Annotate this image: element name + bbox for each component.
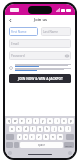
button[interactable]: Email	[9, 39, 71, 48]
button[interactable]: d	[23, 126, 29, 132]
button[interactable]: b	[43, 134, 49, 140]
staticText: t	[35, 119, 37, 123]
button[interactable]: First Name	[9, 27, 38, 36]
button[interactable]: w	[12, 118, 18, 124]
staticText: w	[14, 119, 17, 123]
button[interactable]: y	[40, 118, 46, 124]
button[interactable]: Shift	[6, 134, 14, 140]
staticText: u	[49, 119, 51, 123]
staticText: l	[68, 127, 69, 131]
staticText: k	[60, 127, 62, 131]
staticText: r	[28, 119, 30, 123]
button[interactable]: c	[29, 134, 35, 140]
button[interactable]: s	[16, 126, 22, 132]
staticText: i	[57, 119, 58, 123]
button[interactable]: e	[19, 118, 25, 124]
staticText: p	[70, 119, 72, 123]
staticText: b	[45, 135, 47, 139]
staticText: Password	[11, 54, 25, 58]
staticText: Join us	[34, 17, 47, 22]
staticText: First Name	[11, 30, 27, 34]
button[interactable]: Accept terms	[9, 66, 13, 70]
staticText: JOIN NOW & WIN A JACKPOT	[18, 77, 63, 81]
button[interactable]: Change keyboard	[8, 151, 12, 155]
button[interactable]: space	[20, 142, 63, 148]
staticText: y	[42, 119, 44, 123]
staticText: q	[8, 119, 10, 123]
staticText: a	[11, 127, 13, 131]
staticText: e	[21, 119, 23, 123]
staticText: z	[19, 135, 21, 139]
button[interactable]: t	[33, 118, 39, 124]
staticText: o	[63, 119, 65, 123]
button[interactable]: g	[37, 126, 43, 132]
button[interactable]: k	[58, 126, 64, 132]
button[interactable]: Back	[6, 16, 14, 24]
staticText: Email	[11, 42, 19, 46]
button[interactable]: Last Name	[41, 27, 71, 36]
button[interactable]: z	[17, 134, 22, 140]
button[interactable]: Backspace	[66, 134, 74, 140]
button[interactable]: Emoji	[14, 142, 19, 148]
button[interactable]: v	[36, 134, 42, 140]
button[interactable]: x	[23, 134, 28, 140]
staticText: v	[38, 135, 40, 139]
button[interactable]: h	[44, 126, 50, 132]
staticText: g	[39, 127, 41, 131]
button[interactable]: JOIN NOW & WIN A JACKPOT	[9, 74, 71, 83]
button[interactable]: l	[65, 126, 71, 132]
button[interactable]: n	[50, 134, 56, 140]
staticText: Last Name	[43, 30, 59, 34]
button[interactable]: o	[61, 118, 67, 124]
staticText: c	[31, 135, 33, 139]
staticText: h	[46, 127, 48, 131]
staticText: return	[65, 144, 73, 147]
button[interactable]: Show password	[64, 53, 69, 58]
button[interactable]: m	[57, 134, 63, 140]
button[interactable]: j	[51, 126, 57, 132]
button[interactable]: Password	[9, 51, 71, 60]
button[interactable]: p	[68, 118, 74, 124]
staticText: s	[18, 127, 20, 131]
button[interactable]: q	[6, 118, 11, 124]
staticText: j	[54, 127, 55, 131]
button[interactable]: f	[30, 126, 36, 132]
staticText: n	[52, 135, 54, 139]
staticText: m	[59, 135, 62, 139]
button[interactable]: u	[47, 118, 53, 124]
button[interactable]: return	[64, 142, 74, 148]
button[interactable]: Dictate	[68, 151, 72, 155]
staticText: x	[25, 135, 27, 139]
button[interactable]: r	[26, 118, 32, 124]
staticText: d	[25, 127, 27, 131]
staticText: space	[38, 143, 46, 147]
button[interactable]: i	[54, 118, 60, 124]
staticText: f	[32, 127, 34, 131]
button[interactable]: Numbers	[6, 142, 13, 148]
button[interactable]: a	[9, 126, 15, 132]
